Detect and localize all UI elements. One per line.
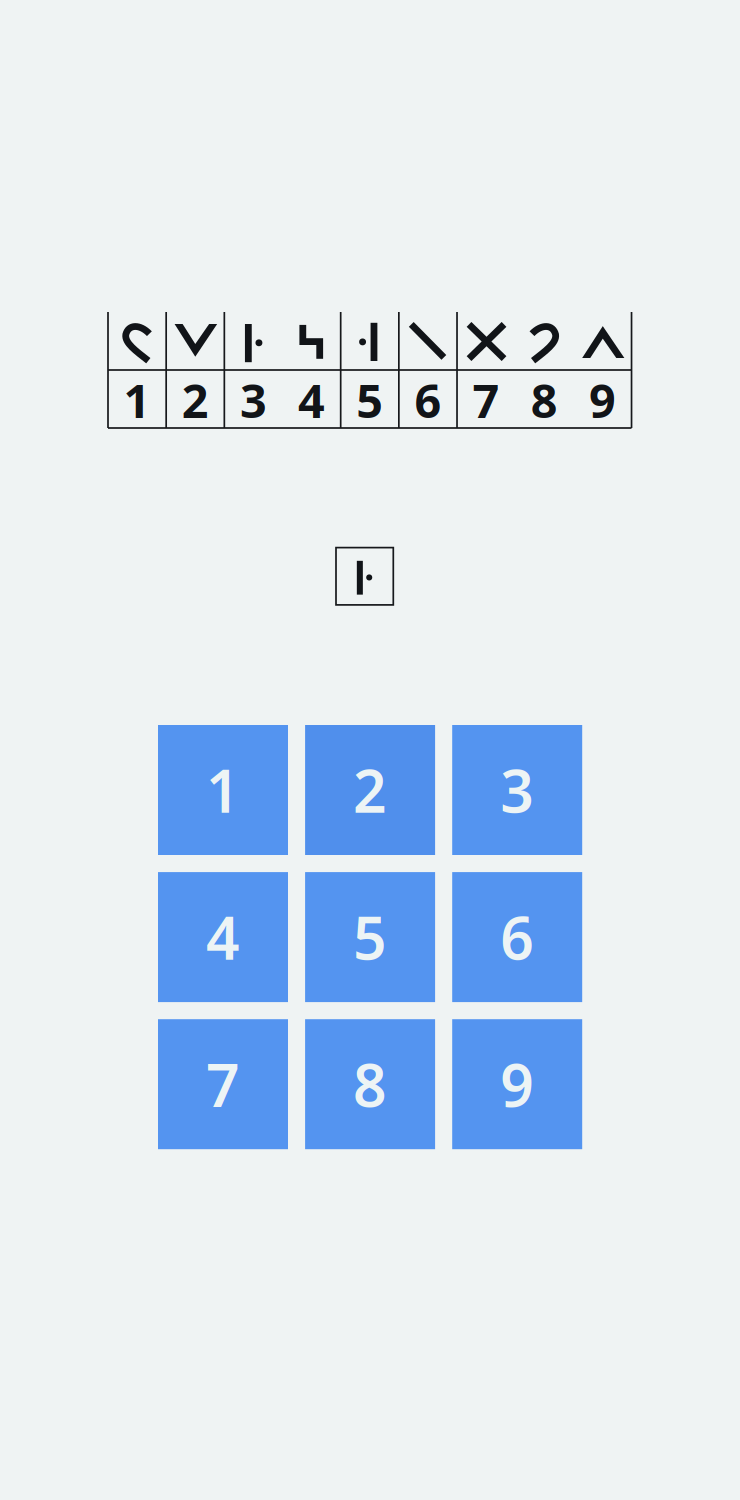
staticText: 7 — [473, 369, 500, 431]
staticText: 9 — [500, 1045, 534, 1123]
button[interactable]: 4 — [158, 872, 288, 1002]
staticText: 2 — [182, 369, 209, 431]
staticText: 9 — [589, 369, 616, 431]
staticText: 6 — [500, 898, 534, 976]
staticText: 4 — [206, 898, 240, 976]
staticText: 8 — [531, 369, 558, 431]
staticText: 1 — [124, 369, 151, 431]
staticText: 5 — [356, 369, 383, 431]
button[interactable]: 3 — [452, 725, 582, 855]
button[interactable]: 9 — [452, 1019, 582, 1149]
button[interactable]: 7 — [158, 1019, 288, 1149]
staticText: 2 — [353, 751, 387, 829]
button[interactable]: 2 — [305, 725, 435, 855]
staticText: 3 — [240, 369, 267, 431]
staticText: 6 — [414, 369, 441, 431]
staticText: 5 — [353, 898, 387, 976]
staticText: 8 — [353, 1045, 387, 1123]
staticText: 3 — [500, 751, 534, 829]
staticText: 4 — [298, 369, 325, 431]
button[interactable]: 6 — [452, 872, 582, 1002]
button[interactable]: 1 — [158, 725, 288, 855]
staticText: 1 — [206, 751, 240, 829]
button[interactable]: 5 — [305, 872, 435, 1002]
staticText: 7 — [206, 1045, 240, 1123]
button[interactable]: 8 — [305, 1019, 435, 1149]
